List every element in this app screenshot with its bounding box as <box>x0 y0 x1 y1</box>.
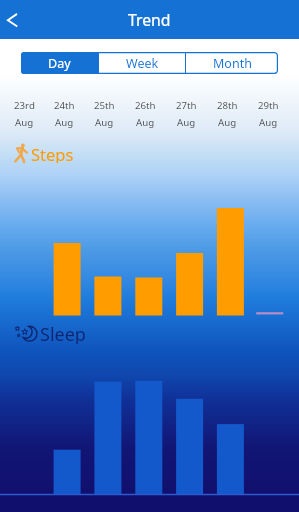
button[interactable]: Day <box>21 52 98 74</box>
staticText: Aug <box>95 116 114 129</box>
staticText: Day <box>48 55 71 72</box>
staticText: Aug <box>218 116 237 129</box>
button[interactable]: Week <box>99 52 185 74</box>
button[interactable]: Sleep <box>13 322 86 344</box>
staticText: Aug <box>15 116 34 129</box>
staticText: 25th <box>94 99 115 112</box>
button[interactable]: Month <box>186 52 278 74</box>
staticText: 28th <box>217 99 238 112</box>
staticText: Week <box>126 55 159 72</box>
staticText: Aug <box>55 116 74 129</box>
staticText: 27th <box>176 99 197 112</box>
staticText: Aug <box>259 116 278 129</box>
staticText: 29th <box>258 99 279 112</box>
button[interactable]: Back <box>0 0 30 39</box>
staticText: Month <box>213 55 252 72</box>
button[interactable]: Steps <box>14 143 74 163</box>
staticText: Steps <box>31 143 74 163</box>
staticText: Sleep <box>40 322 86 344</box>
staticText: Trend <box>128 9 171 31</box>
staticText: 24th <box>54 99 75 112</box>
staticText: Aug <box>136 116 155 129</box>
staticText: 23rd <box>14 99 35 112</box>
staticText: 26th <box>135 99 156 112</box>
staticText: Aug <box>177 116 196 129</box>
